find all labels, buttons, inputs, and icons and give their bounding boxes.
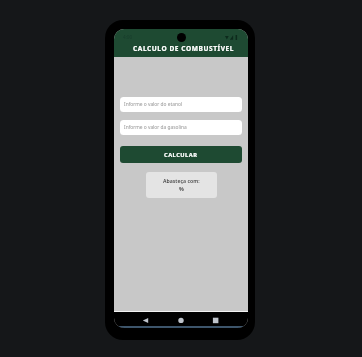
staticText: CALCULAR — [164, 151, 198, 159]
staticText: Informe o valor do etanol — [124, 101, 183, 108]
staticText: % — [179, 185, 184, 192]
staticText: CALCULO DE COMBUSTÍVEL — [133, 44, 234, 53]
button[interactable]: Informe o valor da gasolina — [120, 120, 242, 135]
staticText: 4:00 — [123, 34, 133, 40]
button[interactable]: Abasteça com: — [146, 172, 217, 198]
button[interactable]: Informe o valor do etanol — [120, 97, 242, 112]
other: System navigation — [114, 312, 248, 328]
staticText: Abasteça com: — [163, 177, 200, 184]
staticText: Informe o valor da gasolina — [124, 124, 187, 131]
button[interactable]: CALCULAR — [120, 146, 242, 163]
